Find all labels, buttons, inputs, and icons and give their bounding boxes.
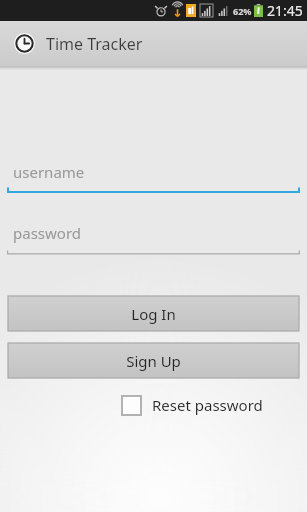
button[interactable]: password — [7, 221, 300, 255]
button[interactable]: Sign Up — [8, 343, 299, 378]
button[interactable]: Log In — [8, 296, 299, 331]
staticText: 21:45 — [267, 1, 303, 20]
button[interactable]: Reset password — [122, 395, 263, 415]
staticText: Time Tracker — [46, 33, 143, 55]
staticText: Sign Up — [126, 351, 181, 371]
staticText: Log In — [131, 304, 176, 324]
staticText: password — [13, 223, 81, 243]
staticText: username — [13, 162, 85, 182]
other: App icon — [14, 33, 35, 54]
staticText: 62% — [233, 5, 252, 17]
button[interactable]: username — [7, 160, 300, 194]
staticText: Reset password — [152, 395, 263, 415]
